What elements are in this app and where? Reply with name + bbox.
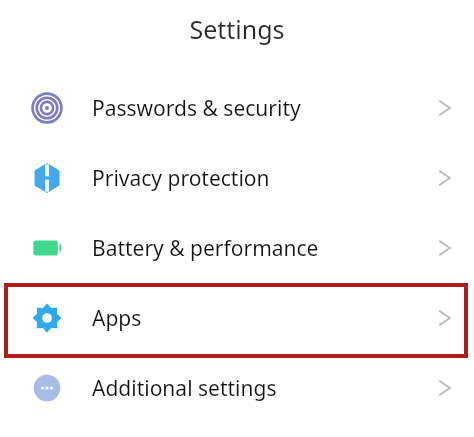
staticText: Additional settings — [92, 374, 444, 403]
button[interactable]: Privacy protection — [0, 143, 474, 213]
button[interactable]: Passwords & security — [0, 73, 474, 143]
staticText: Passwords & security — [92, 94, 444, 123]
button[interactable]: Battery & performance — [0, 213, 474, 283]
staticText: Battery & performance — [92, 234, 444, 263]
staticText: Settings — [189, 12, 285, 46]
button[interactable]: Apps — [0, 283, 474, 353]
button[interactable]: Additional settings — [0, 353, 474, 423]
staticText: Apps — [92, 304, 444, 333]
staticText: Privacy protection — [92, 164, 444, 193]
